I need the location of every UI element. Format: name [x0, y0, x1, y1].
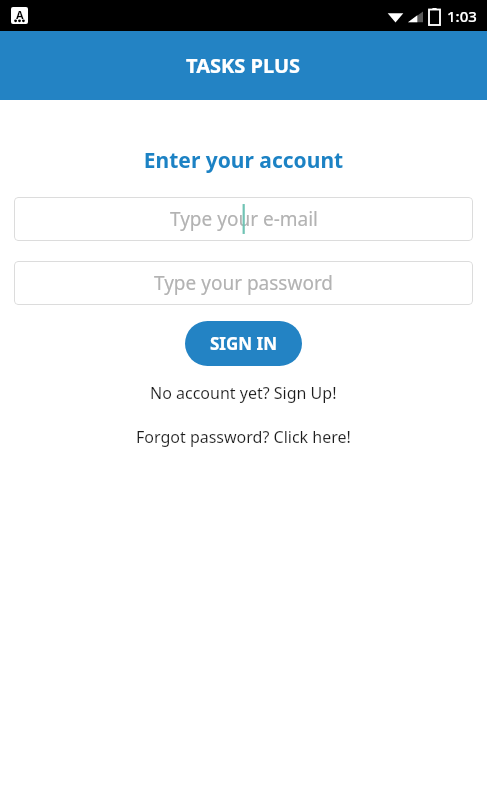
staticText: 1:03	[447, 6, 477, 26]
staticText: Type your e-mail	[170, 206, 318, 232]
staticText: No account yet? Sign Up!	[150, 382, 337, 404]
button[interactable]: Forgot password? Click here!	[130, 425, 357, 449]
button[interactable]: Type your password	[14, 261, 473, 305]
button[interactable]: Type your e-mail	[14, 197, 473, 241]
staticText: TASKS PLUS	[186, 52, 301, 79]
button[interactable]: SIGN IN	[185, 321, 302, 366]
button[interactable]: No account yet? Sign Up!	[144, 381, 343, 405]
staticText: Type your password	[154, 270, 334, 296]
staticText: Enter your account	[0, 146, 487, 175]
staticText: A	[16, 7, 24, 22]
staticText: Forgot password? Click here!	[136, 426, 351, 448]
staticText: SIGN IN	[210, 332, 277, 355]
